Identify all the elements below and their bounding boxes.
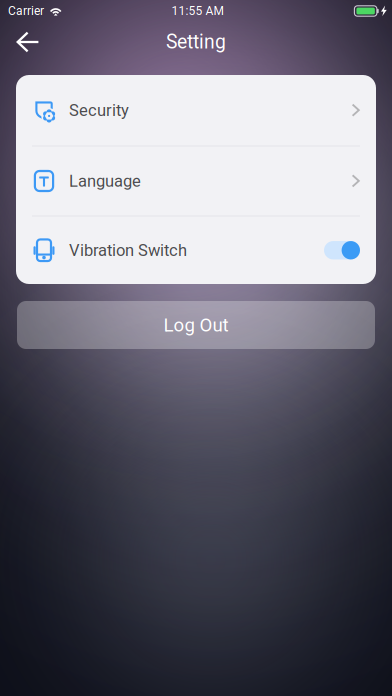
staticText: Language bbox=[69, 171, 141, 191]
staticText: Log Out bbox=[163, 314, 228, 336]
staticText: Carrier bbox=[8, 4, 44, 18]
staticText: 11:55 AM bbox=[171, 4, 223, 18]
button[interactable]: Log Out bbox=[17, 301, 375, 349]
staticText: Security bbox=[69, 101, 129, 120]
button[interactable]: Security bbox=[16, 75, 376, 145]
staticText: Setting bbox=[166, 31, 226, 53]
button[interactable]: Vibration Switch bbox=[16, 216, 376, 284]
button[interactable]: Language bbox=[16, 146, 376, 215]
staticText: Vibration Switch bbox=[69, 241, 187, 260]
button[interactable]: Back bbox=[8, 20, 48, 64]
